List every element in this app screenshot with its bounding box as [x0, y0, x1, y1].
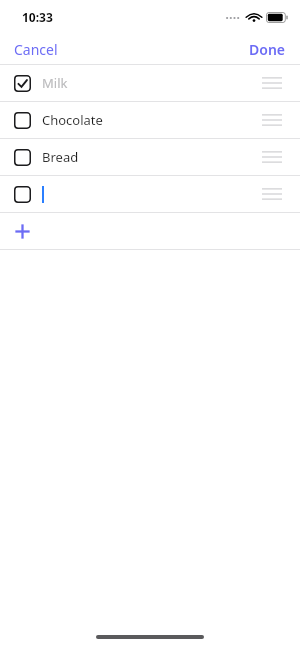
- button[interactable]: Add item: [0, 213, 300, 249]
- staticText: Done: [249, 40, 286, 59]
- staticText: Milk: [42, 74, 68, 92]
- button[interactable]: Checked: [0, 65, 300, 101]
- button[interactable]: Unchecked: [14, 186, 31, 203]
- staticText: Bread: [42, 148, 79, 166]
- button[interactable]: Cancel: [0, 36, 72, 63]
- other: Add item: [14, 223, 31, 240]
- button[interactable]: Reorder: [262, 186, 282, 202]
- button[interactable]: Unchecked: [0, 102, 300, 138]
- button[interactable]: Done: [235, 36, 300, 63]
- button[interactable]: Unchecked: [14, 112, 31, 129]
- button[interactable]: Reorder: [262, 149, 282, 165]
- button[interactable]: Unchecked: [0, 139, 300, 175]
- staticText: Cancel: [14, 40, 58, 59]
- button[interactable]: Checked: [14, 75, 31, 92]
- staticText: Chocolate: [42, 111, 103, 129]
- button[interactable]: Unchecked: [14, 149, 31, 166]
- staticText: 10:33: [22, 9, 53, 25]
- button[interactable]: Reorder: [262, 75, 282, 91]
- button[interactable]: Unchecked: [0, 176, 300, 212]
- button[interactable]: Reorder: [262, 112, 282, 128]
